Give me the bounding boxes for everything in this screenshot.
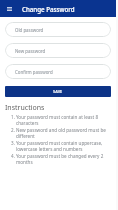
staticText: 3. (11, 140, 16, 146)
staticText: Old password (15, 27, 44, 33)
staticText: 4. (11, 153, 16, 159)
staticText: Your password must contain uppercase, lo… (16, 140, 112, 152)
button[interactable]: Confirm password (5, 64, 111, 79)
button[interactable]: SAVE (5, 86, 111, 97)
staticText: Change Password (22, 5, 75, 13)
button[interactable]: New password (5, 43, 111, 58)
staticText: New password (15, 48, 46, 54)
staticText: Your password must contain at least 8 ch… (16, 114, 112, 126)
staticText: New password and old password must be di… (16, 127, 112, 139)
staticText: 2. (11, 127, 16, 133)
button[interactable]: Open navigation menu (3, 2, 16, 15)
staticText: 1. (11, 114, 16, 120)
staticText: Confirm password (15, 69, 53, 75)
staticText: Instructions (5, 103, 45, 113)
button[interactable]: Old password (5, 22, 111, 37)
staticText: SAVE (53, 89, 63, 94)
staticText: Your password must be changed every 2 mo… (16, 153, 112, 165)
